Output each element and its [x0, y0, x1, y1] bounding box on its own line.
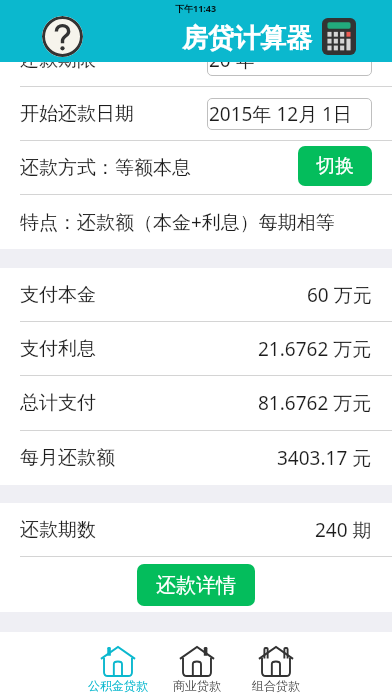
button[interactable]: 公积金贷款 [78, 632, 157, 693]
button[interactable]: 还款详情 [137, 564, 255, 606]
staticText: 特点：还款额（本金+利息）每期相等 [20, 209, 335, 235]
staticText: 总计支付 [20, 391, 96, 415]
staticText: 还款期限 [20, 48, 96, 72]
staticText: 商业贷款 [173, 678, 221, 693]
staticText: 支付利息 [20, 337, 96, 361]
staticText: 支付本金 [20, 283, 96, 307]
button[interactable]: 20 年 [207, 44, 372, 76]
button[interactable]: 组合贷款 [236, 632, 315, 693]
staticText: 还款详情 [156, 573, 236, 598]
button[interactable]: 切换 [298, 146, 372, 186]
staticText: 开始还款日期 [20, 102, 134, 126]
staticText: 还款期数 [20, 518, 96, 542]
staticText: 组合贷款 [252, 678, 300, 693]
staticText: 下午11:43 [175, 2, 217, 14]
staticText: 2015年 12月 1日 [209, 101, 352, 127]
staticText: 21.6762 万元 [258, 336, 372, 362]
staticText: 81.6762 万元 [258, 390, 372, 416]
button[interactable]: Help [42, 16, 83, 57]
staticText: 3403.17 元 [277, 445, 372, 471]
staticText: 每月还款额 [20, 446, 115, 470]
staticText: 公积金贷款 [88, 678, 148, 693]
staticText: 20 年 [209, 47, 255, 73]
staticText: 240 期 [315, 517, 372, 543]
staticText: 还款方式：等额本息 [20, 156, 191, 180]
staticText: 切换 [316, 154, 354, 178]
button[interactable]: 商业贷款 [157, 632, 236, 693]
button[interactable]: 2015年 12月 1日 [207, 98, 372, 130]
staticText: 房贷计算器 [182, 22, 312, 55]
staticText: 60 万元 [307, 282, 372, 308]
